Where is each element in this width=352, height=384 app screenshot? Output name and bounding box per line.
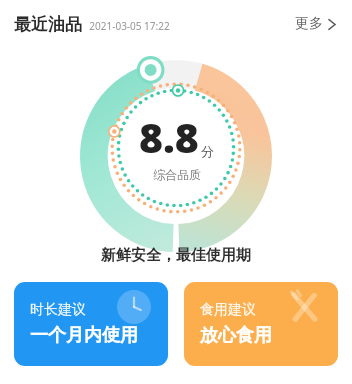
other: Food xyxy=(287,290,321,324)
staticText: 2021-03-05 17:22 xyxy=(89,19,170,33)
staticText: 8.8 xyxy=(139,109,199,165)
staticText: 时长建议 xyxy=(30,301,86,319)
staticText: 放心食用 xyxy=(200,324,272,347)
staticText: 更多 xyxy=(295,15,323,33)
staticText: 新鲜安全，最佳使用期 xyxy=(101,246,251,265)
staticText: 一个月内使用 xyxy=(30,324,138,347)
staticText: 分 xyxy=(201,143,214,159)
staticText: 食用建议 xyxy=(200,301,256,319)
button[interactable]: Duration xyxy=(14,282,168,366)
other: Duration xyxy=(117,290,151,324)
staticText: 最近油品 xyxy=(14,14,82,35)
button[interactable]: Food xyxy=(184,282,338,366)
button[interactable]: 更多 xyxy=(293,12,338,36)
staticText: 综合品质 xyxy=(153,167,201,182)
